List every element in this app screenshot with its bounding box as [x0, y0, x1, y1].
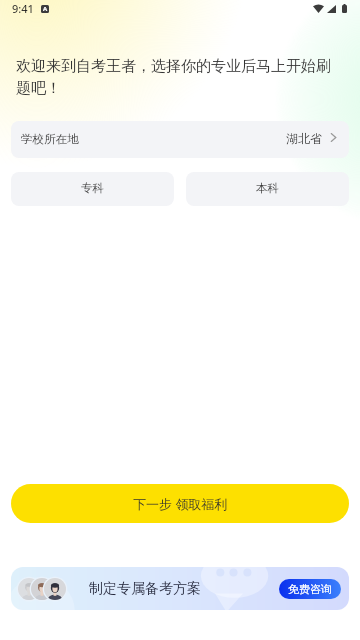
button[interactable]: 专科: [11, 172, 174, 206]
button[interactable]: 下一步 领取福利: [11, 484, 349, 523]
staticText: 欢迎来到自考王者，选择你的专业后马上开始刷题吧！: [16, 57, 344, 98]
button[interactable]: 学校所在地: [11, 121, 349, 158]
staticText: 9:41: [12, 1, 34, 16]
staticText: 专科: [81, 181, 104, 195]
button[interactable]: 制定专属备考方案: [11, 567, 349, 610]
button[interactable]: 本科: [186, 172, 349, 206]
staticText: 学校所在地: [21, 132, 79, 146]
button[interactable]: 免费咨询: [279, 579, 341, 599]
staticText: 制定专属备考方案: [89, 580, 201, 598]
staticText: 湖北省: [286, 131, 322, 146]
staticText: 下一步 领取福利: [133, 495, 228, 513]
staticText: 免费咨询: [288, 582, 332, 596]
staticText: 本科: [256, 181, 279, 195]
staticText: A: [43, 5, 48, 13]
